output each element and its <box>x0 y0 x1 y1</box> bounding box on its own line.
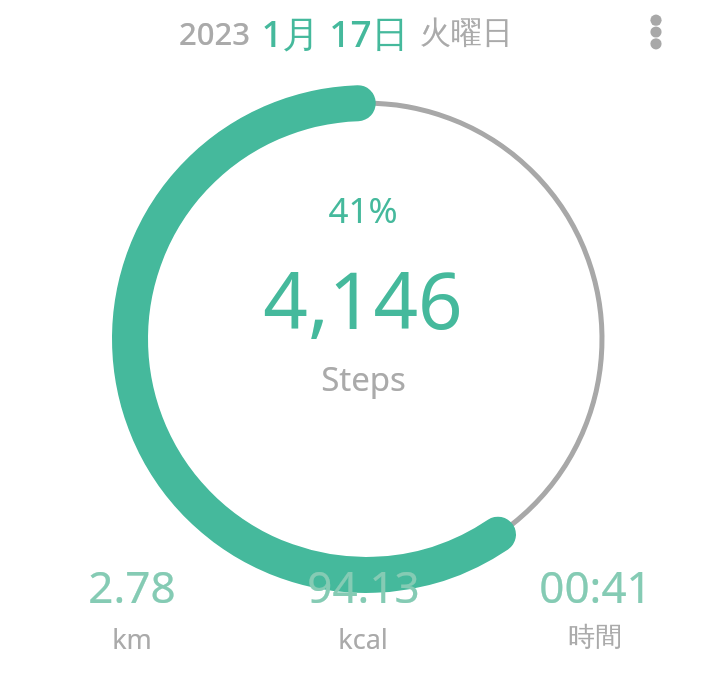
staticText: 時間 <box>568 620 622 654</box>
staticText: 1月 17日 <box>261 7 409 58</box>
staticText: kcal <box>338 620 388 657</box>
button[interactable]: 2.78 <box>32 556 232 657</box>
button[interactable]: More options <box>632 8 680 56</box>
staticText: 41% <box>328 186 398 234</box>
staticText: 2023 <box>179 12 250 54</box>
staticText: Steps <box>321 356 406 401</box>
staticText: 4,146 <box>263 246 463 352</box>
button[interactable]: 2023 <box>179 7 513 58</box>
button[interactable]: 00:41 <box>495 556 695 654</box>
staticText: 火曜日 <box>420 13 513 52</box>
staticText: 94.13 <box>307 556 420 616</box>
staticText: 00:41 <box>539 556 652 616</box>
button[interactable]: 94.13 <box>263 556 463 657</box>
staticText: km <box>112 620 152 657</box>
staticText: 2.78 <box>88 556 176 616</box>
